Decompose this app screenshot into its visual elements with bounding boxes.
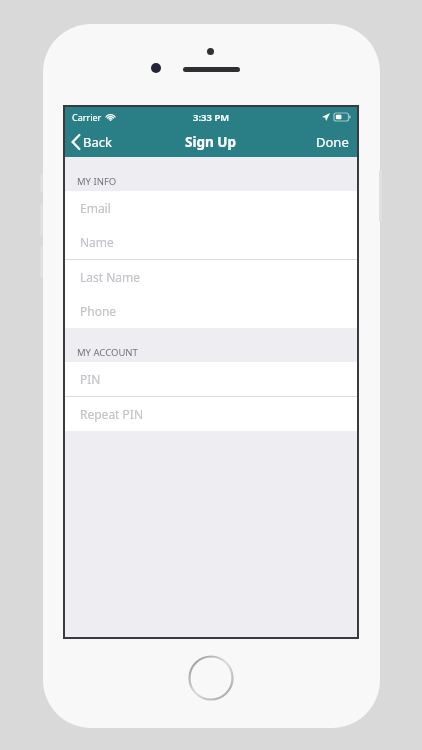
staticText: Sign Up: [185, 133, 237, 151]
button[interactable]: Done: [308, 129, 357, 155]
staticText: 3:33 PM: [193, 111, 230, 124]
button[interactable]: Back: [65, 129, 120, 155]
staticText: Carrier: [72, 111, 102, 123]
staticText: Repeat PIN: [80, 406, 144, 422]
staticText: MY ACCOUNT: [77, 346, 138, 359]
staticText: MY INFO: [77, 175, 117, 188]
button[interactable]: Phone: [65, 294, 357, 328]
staticText: Done: [316, 133, 349, 151]
staticText: Last Name: [80, 269, 141, 285]
button[interactable]: Email: [65, 191, 357, 225]
staticText: Phone: [80, 303, 117, 319]
other: Home: [188, 655, 234, 701]
button[interactable]: PIN: [65, 362, 357, 396]
staticText: Name: [80, 234, 114, 250]
button[interactable]: Last Name: [65, 260, 357, 294]
button[interactable]: Repeat PIN: [65, 397, 357, 431]
button[interactable]: Name: [65, 225, 357, 259]
staticText: PIN: [80, 371, 101, 387]
staticText: Back: [83, 133, 112, 151]
staticText: Email: [80, 200, 111, 216]
